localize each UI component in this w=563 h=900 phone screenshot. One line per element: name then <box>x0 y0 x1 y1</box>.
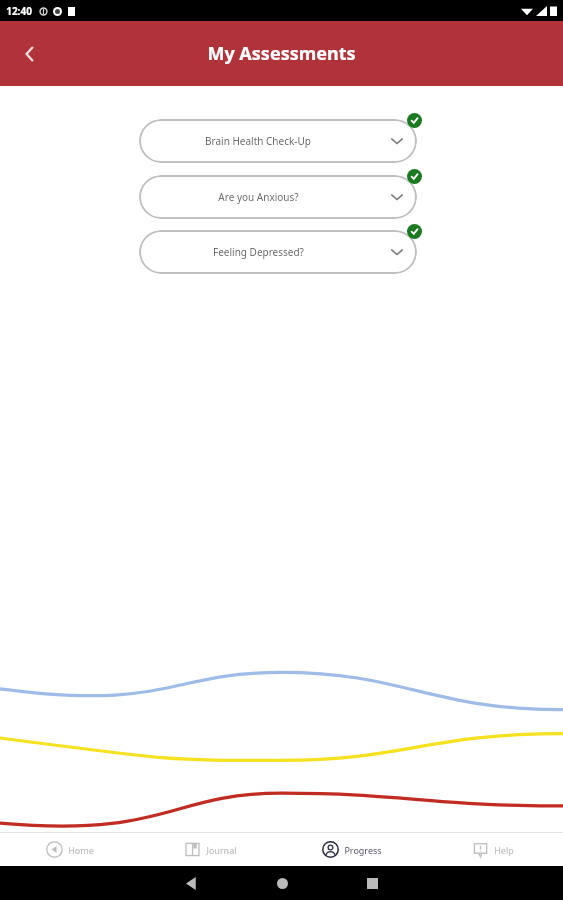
staticText: Home <box>68 844 94 856</box>
button[interactable]: Brain Health Check-Up <box>139 119 417 163</box>
button[interactable]: Feeling Depressed? <box>139 230 417 274</box>
staticText: Brain Health Check-Up <box>205 134 311 148</box>
staticText: Help <box>494 844 514 856</box>
staticText: 12:40 <box>6 4 32 18</box>
button[interactable]: Recents <box>349 866 395 900</box>
button[interactable]: Progress <box>281 833 422 866</box>
staticText: Feeling Depressed? <box>213 245 304 259</box>
button[interactable]: Journal <box>140 833 281 866</box>
button[interactable]: Back <box>10 34 50 74</box>
staticText: My Assessments <box>207 41 356 66</box>
button[interactable]: Home <box>0 833 140 866</box>
button[interactable]: Help <box>422 833 563 866</box>
staticText: Progress <box>344 844 382 856</box>
button[interactable]: Back <box>169 866 215 900</box>
button[interactable]: Home <box>259 866 305 900</box>
staticText: Journal <box>206 844 237 856</box>
button[interactable]: Are you Anxious? <box>139 175 417 219</box>
staticText: Are you Anxious? <box>218 190 299 204</box>
